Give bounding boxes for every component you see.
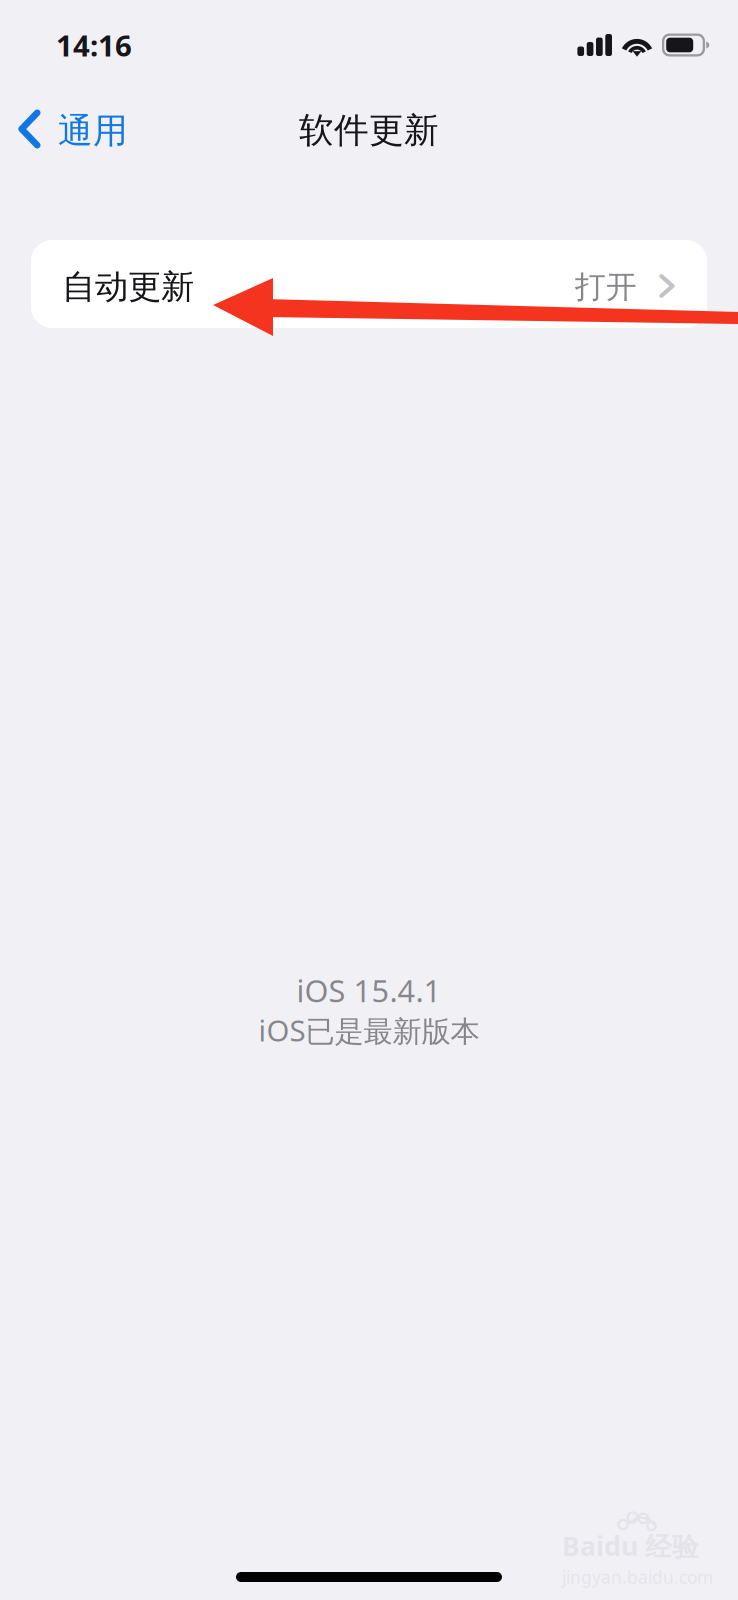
button[interactable]: 自动更新: [31, 240, 707, 328]
staticText: 14:16: [56, 25, 132, 64]
staticText: 自动更新: [62, 266, 194, 307]
staticText: iOS 15.4.1: [296, 970, 441, 1011]
staticText: 打开: [575, 268, 637, 306]
staticText: jingyan.baidu.com: [562, 1566, 713, 1589]
staticText: 通用: [58, 110, 128, 152]
staticText: 软件更新: [299, 109, 439, 152]
staticText: iOS已是最新版本: [258, 1011, 479, 1050]
button[interactable]: 通用: [0, 95, 152, 161]
staticText: Baidu 经验: [562, 1528, 699, 1564]
